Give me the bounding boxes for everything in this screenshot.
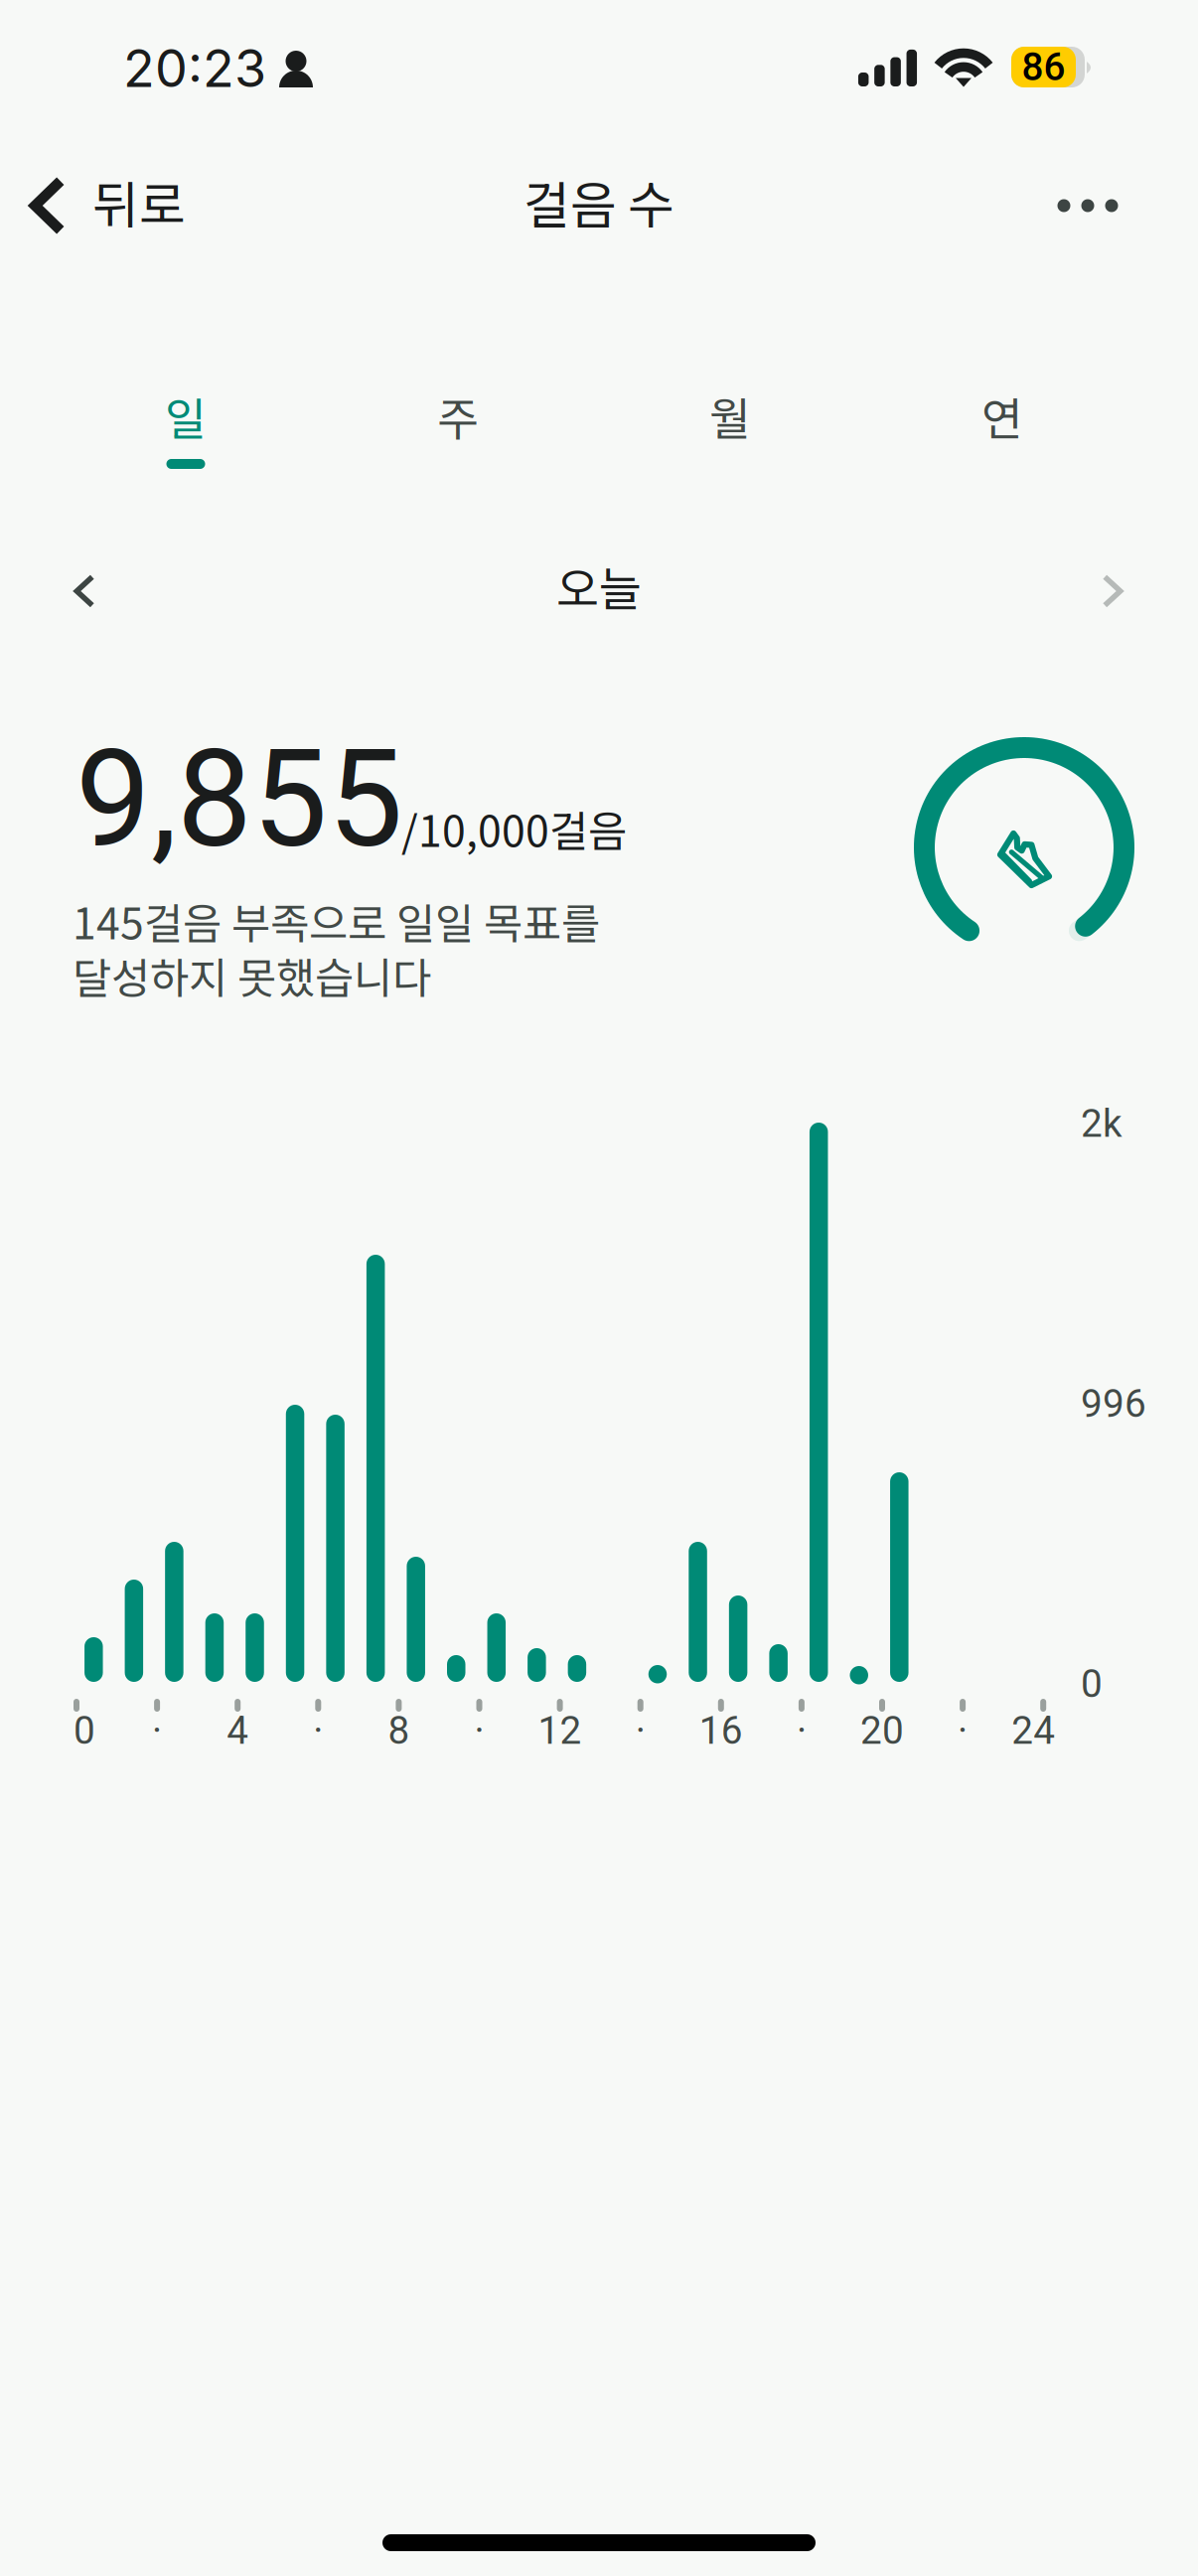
staticText: /10,000걸음 [401, 798, 627, 859]
staticText: 24 [1011, 1708, 1055, 1753]
staticText: 8 [388, 1708, 410, 1753]
staticText: 주 [437, 383, 479, 449]
button[interactable]: Previous day [40, 546, 129, 636]
staticText: 뒤로 [92, 165, 186, 238]
staticText: 0 [74, 1708, 95, 1753]
staticText: 86 [1022, 45, 1065, 90]
staticText: 145걸음 부족으로 일일 목표를 [73, 890, 600, 952]
button[interactable]: 일 [50, 378, 322, 497]
staticText: 걸음 수 [524, 165, 674, 238]
button[interactable]: 주 [322, 378, 594, 497]
staticText: 996 [1081, 1381, 1146, 1426]
staticText: · [152, 1708, 162, 1753]
staticText: 20:23 [123, 37, 266, 99]
button[interactable]: 월 [594, 378, 866, 497]
staticText: 2k [1081, 1101, 1123, 1146]
staticText: · [635, 1708, 645, 1753]
staticText: · [474, 1708, 484, 1753]
staticText: 20 [860, 1708, 904, 1753]
staticText: · [313, 1708, 323, 1753]
staticText: 연 [981, 383, 1023, 449]
staticText: 9,855 [75, 721, 403, 878]
button[interactable]: Next day [1068, 546, 1157, 636]
staticText: 4 [227, 1708, 249, 1753]
staticText: 12 [538, 1708, 582, 1753]
staticText: 일 [165, 383, 207, 449]
staticText: 0 [1081, 1661, 1103, 1706]
button[interactable]: More options [1028, 151, 1147, 260]
button[interactable]: 연 [866, 378, 1138, 497]
button[interactable]: 뒤로 [22, 150, 208, 261]
staticText: · [797, 1708, 807, 1753]
staticText: 오늘 [556, 553, 642, 620]
staticText: 달성하지 못했습니다 [73, 945, 431, 1006]
staticText: 16 [699, 1708, 743, 1753]
staticText: 월 [709, 383, 751, 449]
staticText: · [958, 1708, 968, 1753]
